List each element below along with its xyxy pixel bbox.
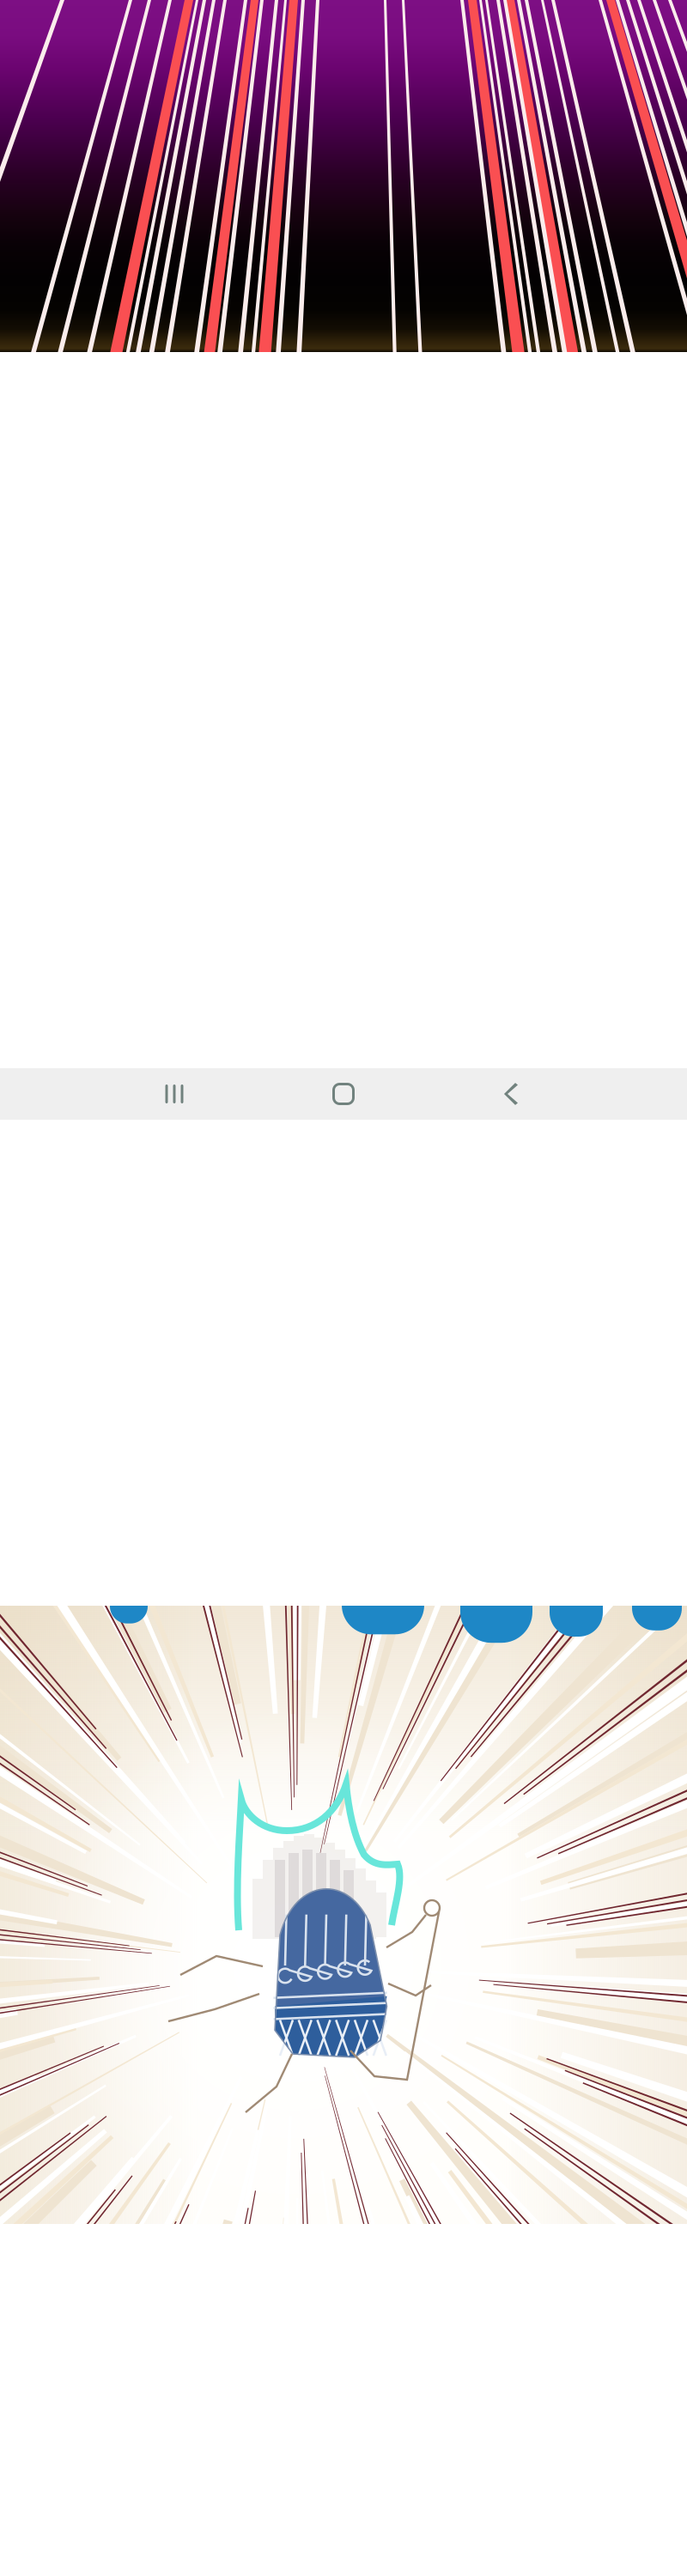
button[interactable]: Back [486,1068,539,1120]
button[interactable]: Recent apps [148,1068,201,1120]
button[interactable]: Home [317,1068,370,1120]
